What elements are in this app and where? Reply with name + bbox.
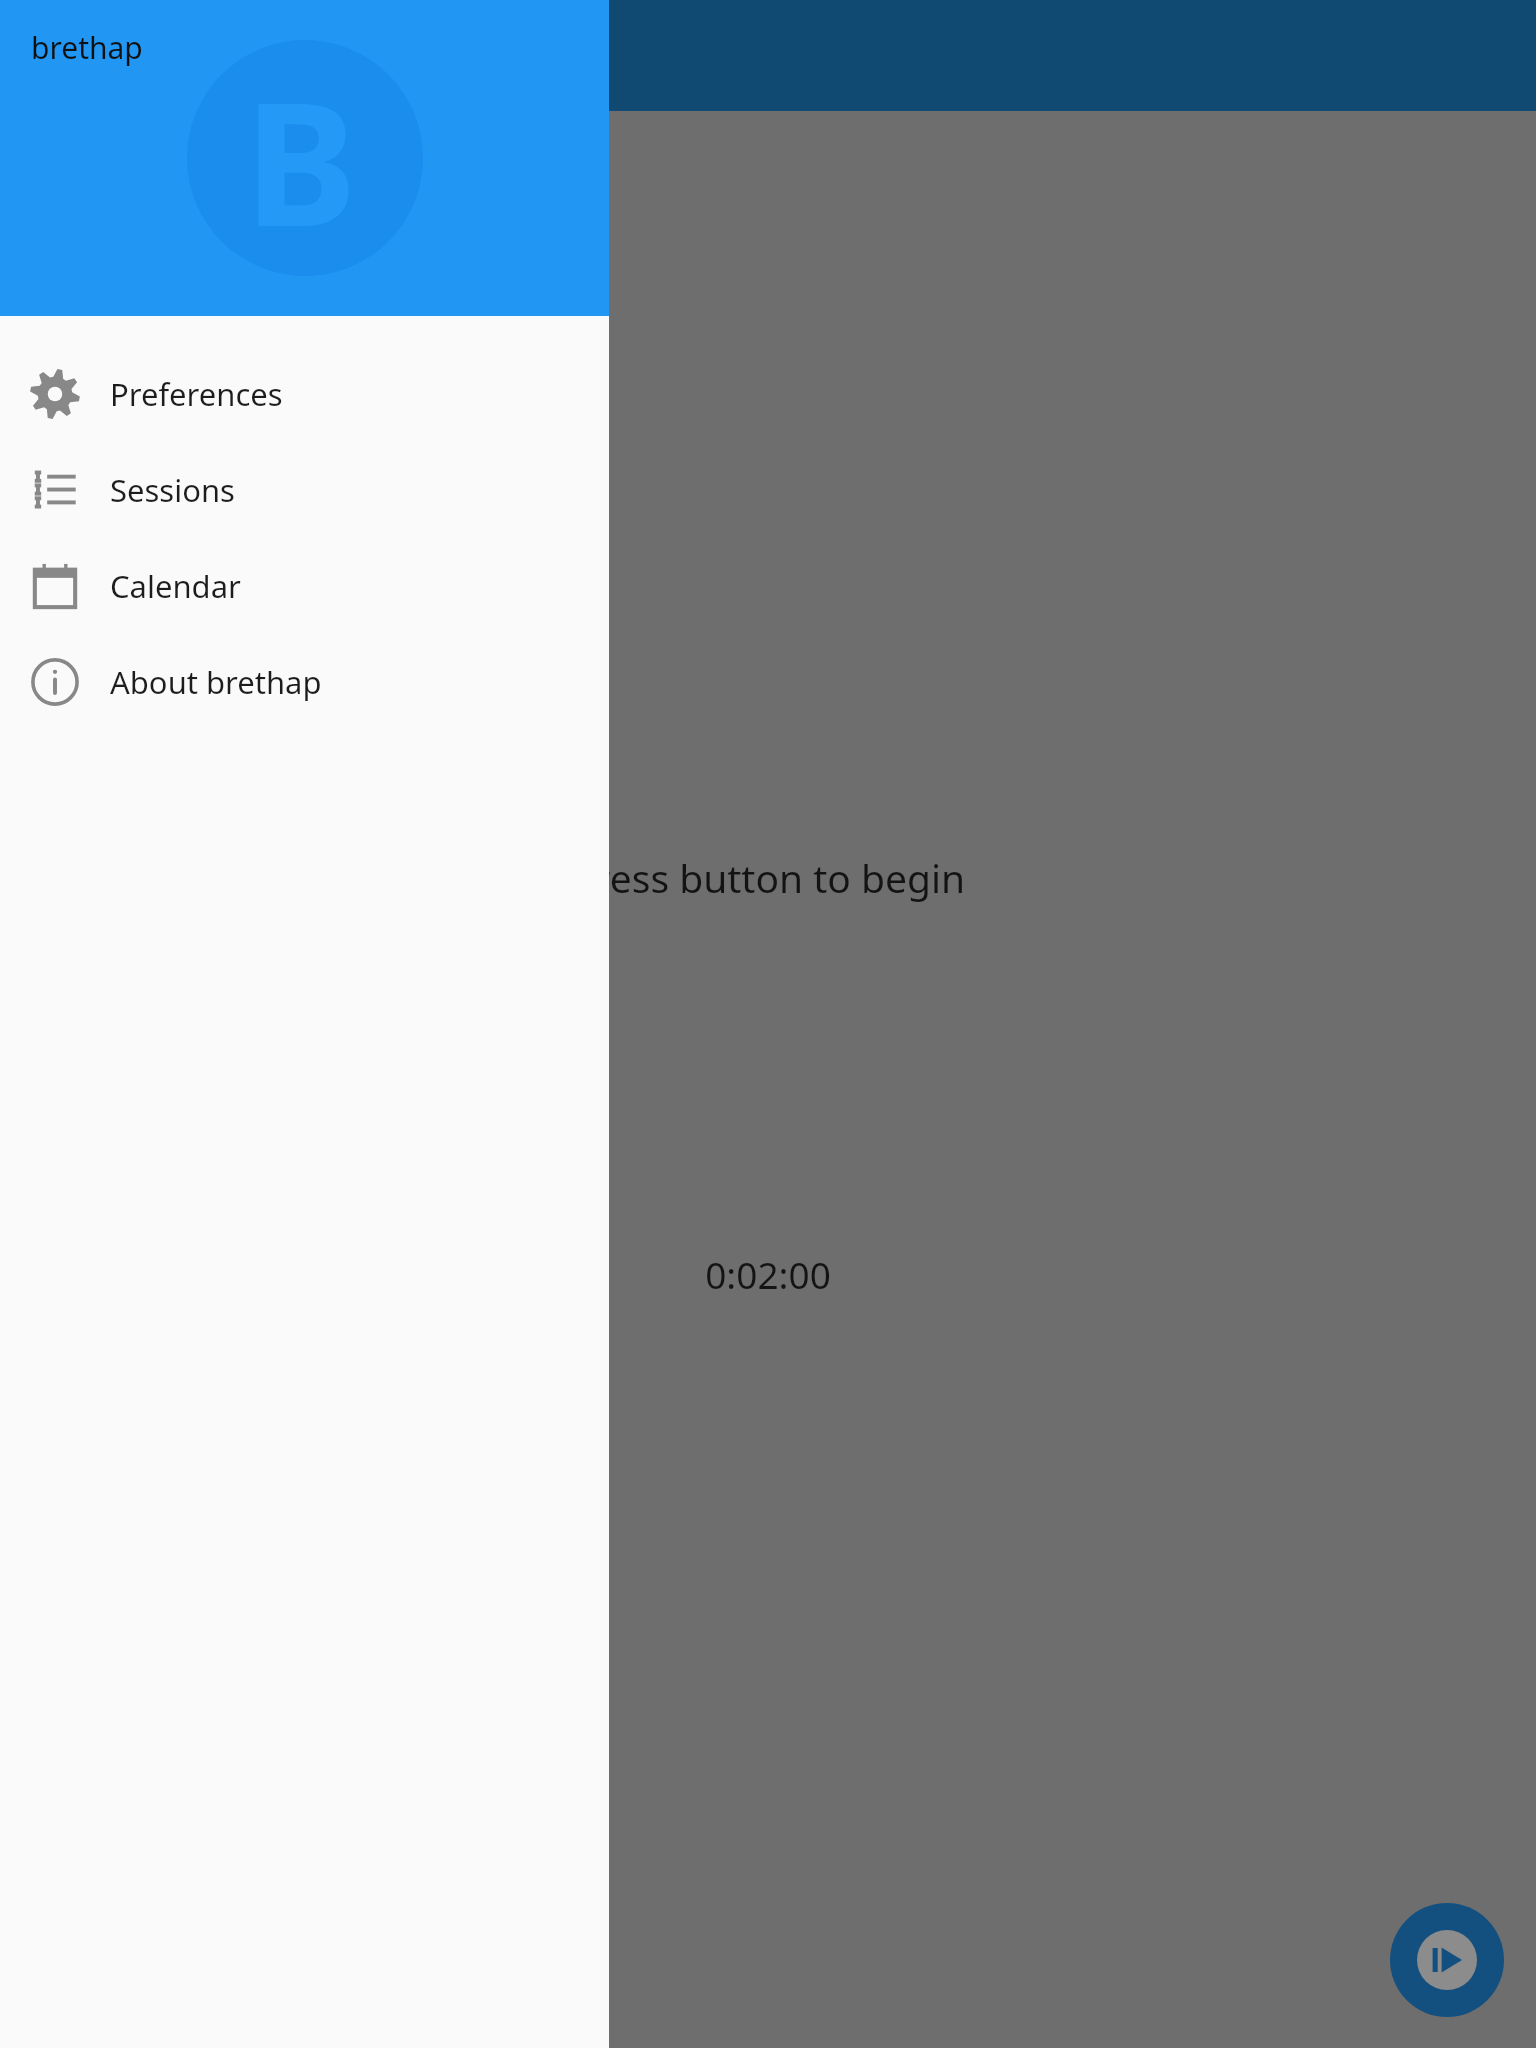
staticText: About brethap [110, 661, 322, 703]
staticText: Preferences [110, 373, 283, 415]
button[interactable]: Calendar [0, 538, 609, 634]
staticText: B [244, 44, 358, 276]
staticText: Calendar [110, 565, 241, 607]
button[interactable]: Sessions [0, 442, 609, 538]
staticText: brethap [31, 27, 143, 68]
staticText: Sessions [110, 469, 235, 511]
staticText: 0:02:00 [0, 1249, 1536, 1299]
button[interactable]: Start breathing session [1390, 1903, 1504, 2017]
button[interactable]: About brethap [0, 634, 609, 730]
staticText: Press button to begin [0, 851, 1536, 904]
button[interactable]: Preferences [0, 346, 609, 442]
